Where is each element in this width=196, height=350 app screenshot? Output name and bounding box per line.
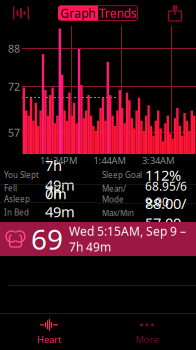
staticText: Sleep Goal [102,170,142,180]
staticText: 1:44AM [93,154,125,167]
button[interactable]: More [98,315,196,349]
staticText: 69 [31,220,63,258]
button[interactable]: 69 [0,222,196,256]
staticText: Max/Min [102,208,134,218]
staticText: 68.95/69.00 [145,178,187,210]
button[interactable]: Share [158,1,192,25]
staticText: 88 [8,41,20,56]
staticText: Heart [37,333,61,346]
button[interactable]: Trends [98,5,138,20]
staticText: Graph [60,5,95,21]
staticText: 11:34PM [40,154,77,167]
staticText: You Slept [4,170,39,180]
staticText: In Bed [4,207,29,218]
staticText: Mode [102,194,124,205]
button[interactable]: Graph [58,5,98,20]
button[interactable]: Heart [0,315,98,349]
staticText: 3:34AM [142,154,174,167]
staticText: More [135,333,158,346]
button[interactable]: Charts [4,1,38,25]
staticText: 0m [45,184,67,203]
staticText: 88.00/57.00 [145,193,186,232]
staticText: Trends [99,5,137,21]
staticText: 7h 49m [45,155,75,194]
staticText: Fell Asleep [4,183,30,204]
staticText: 57 [8,125,20,140]
staticText: 7h 49m [45,182,75,221]
staticText: Mean/ [102,183,126,194]
staticText: 9:25PM - 5:15AM [45,221,79,243]
staticText: 112% [145,165,181,185]
staticText: 72 [8,79,20,94]
staticText: Wed 5:15AM, Sep 9 – 7h 49m [69,223,186,255]
